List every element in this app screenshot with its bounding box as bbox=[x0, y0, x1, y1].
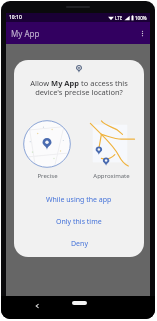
staticText: While using the app bbox=[46, 195, 112, 205]
staticText: Approximate bbox=[93, 172, 130, 180]
staticText: LTE bbox=[115, 15, 123, 21]
button[interactable]: Back bbox=[31, 300, 42, 311]
button[interactable]: Deny bbox=[14, 233, 144, 255]
staticText: Deny bbox=[71, 239, 88, 249]
staticText: Only this time bbox=[56, 217, 102, 227]
staticText: 10:10 bbox=[9, 14, 22, 21]
button[interactable]: While using the app bbox=[14, 189, 144, 211]
button[interactable]: More options bbox=[136, 27, 148, 39]
staticText: My App bbox=[11, 28, 40, 39]
button[interactable]: Only this time bbox=[14, 211, 144, 233]
staticText: Allow My App to access this device's pre… bbox=[23, 78, 135, 98]
staticText: 100% bbox=[135, 15, 147, 21]
staticText: Precise bbox=[37, 172, 58, 180]
button[interactable]: Home bbox=[72, 301, 87, 305]
